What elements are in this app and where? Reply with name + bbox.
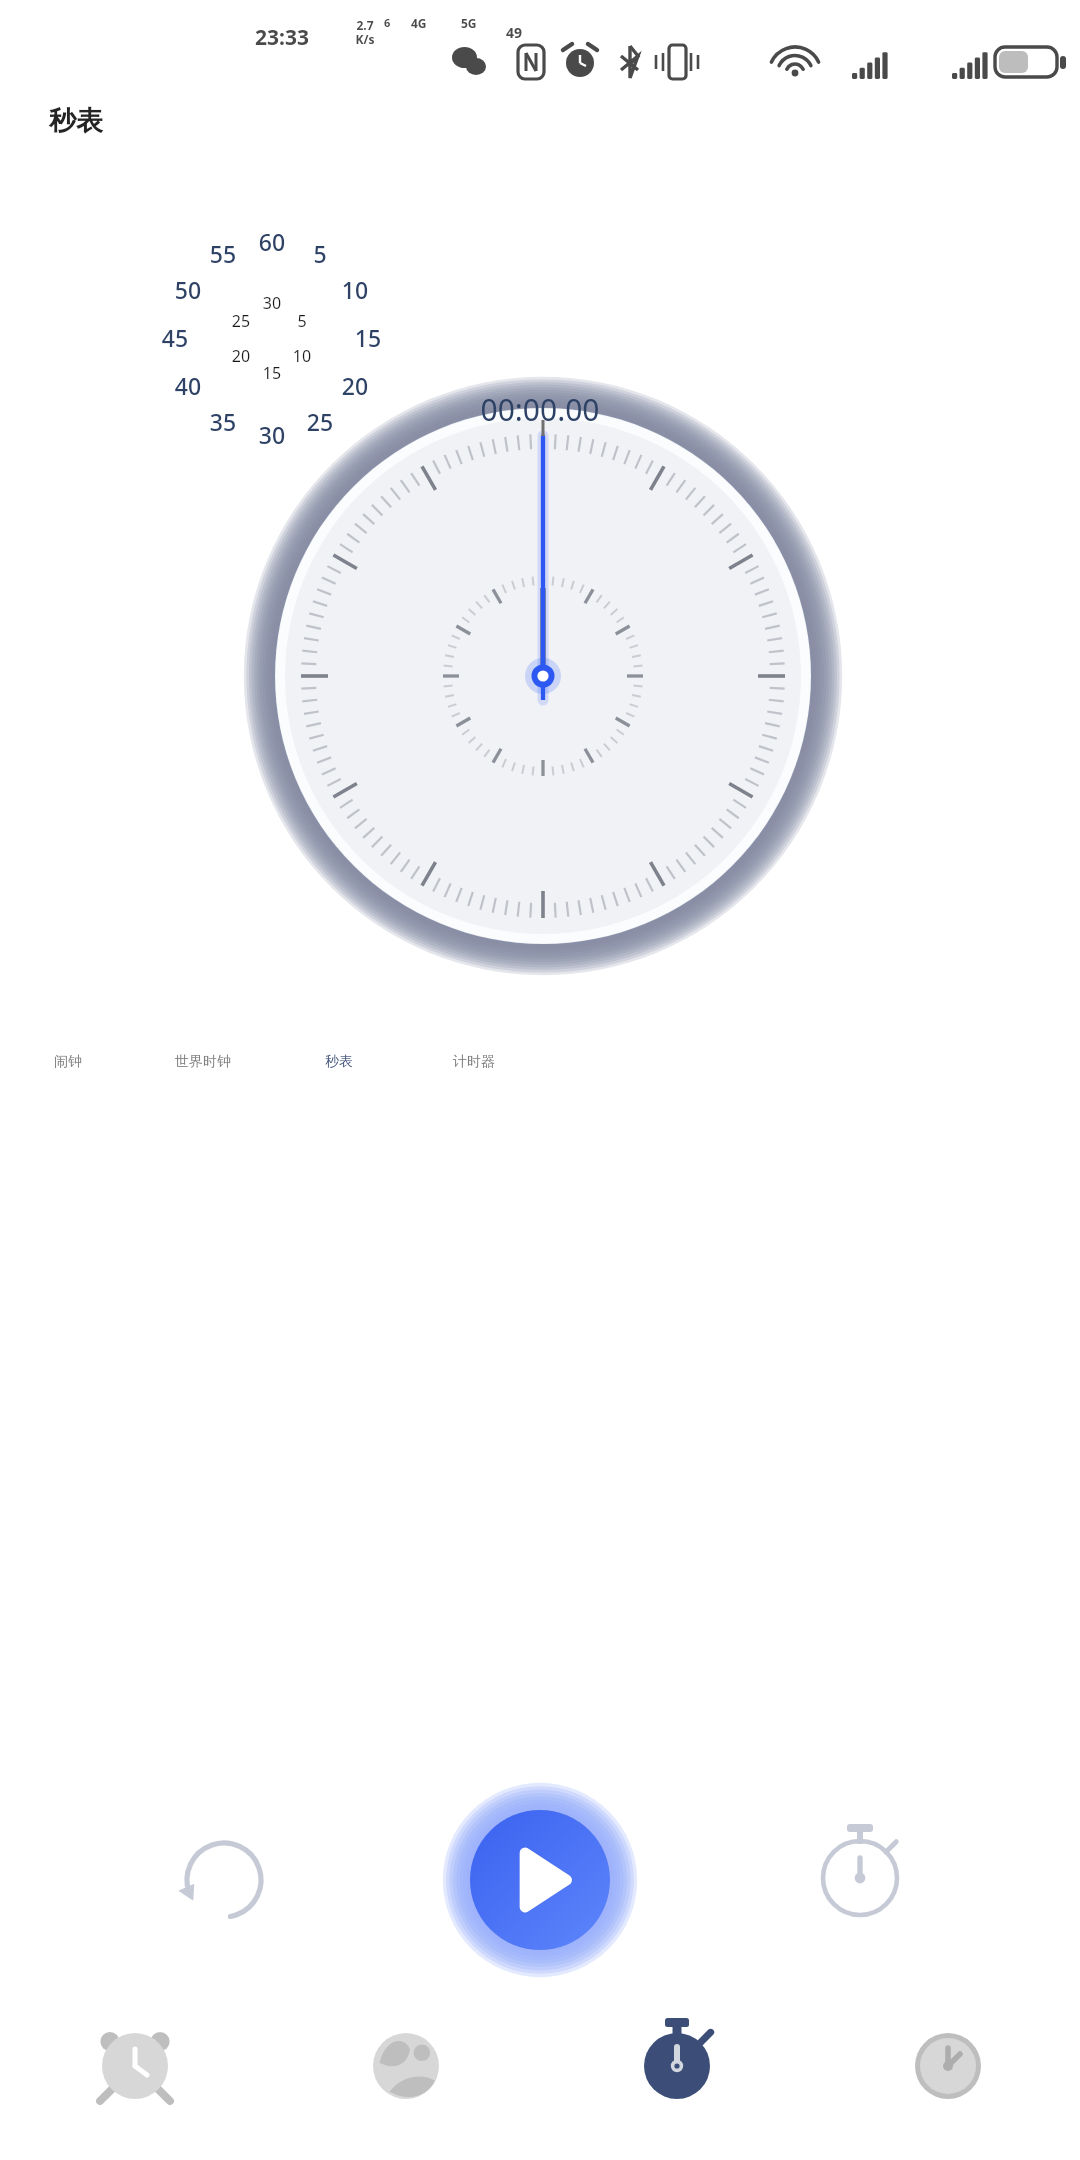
staticText: 23:33 [255, 23, 309, 52]
staticText: 10 [284, 345, 320, 367]
staticText: 50 [164, 274, 212, 305]
staticText: 世界时钟 [143, 1053, 263, 1071]
staticText: 5G [461, 15, 477, 31]
staticText: 20 [223, 345, 259, 367]
staticText: 4G [411, 15, 427, 31]
staticText: 60 [248, 226, 296, 257]
staticText: 45 [151, 322, 199, 353]
staticText: 20 [331, 370, 379, 401]
staticText: 49 [499, 23, 529, 42]
staticText: 25 [223, 310, 259, 332]
staticText: 30 [254, 292, 290, 314]
staticText: 6 [384, 15, 391, 30]
staticText: 30 [248, 419, 296, 450]
button[interactable]: Lap [390, 908, 470, 988]
staticText: 00:00.00 [0, 389, 1080, 430]
staticText: 秒表 [279, 1053, 399, 1071]
staticText: 25 [296, 406, 344, 437]
staticText: 秒表 [49, 104, 103, 138]
staticText: K/s [347, 31, 383, 47]
staticText: 35 [199, 406, 247, 437]
staticText: 2.7 [347, 17, 383, 33]
button[interactable]: 闹钟 [0, 1000, 270, 1100]
staticText: 15 [344, 322, 392, 353]
staticText: 10 [331, 274, 379, 305]
staticText: 40 [164, 370, 212, 401]
staticText: 15 [254, 362, 290, 384]
staticText: 闹钟 [8, 1053, 128, 1071]
staticText: 55 [199, 238, 247, 269]
staticText: 5 [284, 310, 320, 332]
button[interactable]: 世界时钟 [270, 1000, 540, 1100]
staticText: 计时器 [414, 1053, 534, 1071]
staticText: 5 [296, 238, 344, 269]
